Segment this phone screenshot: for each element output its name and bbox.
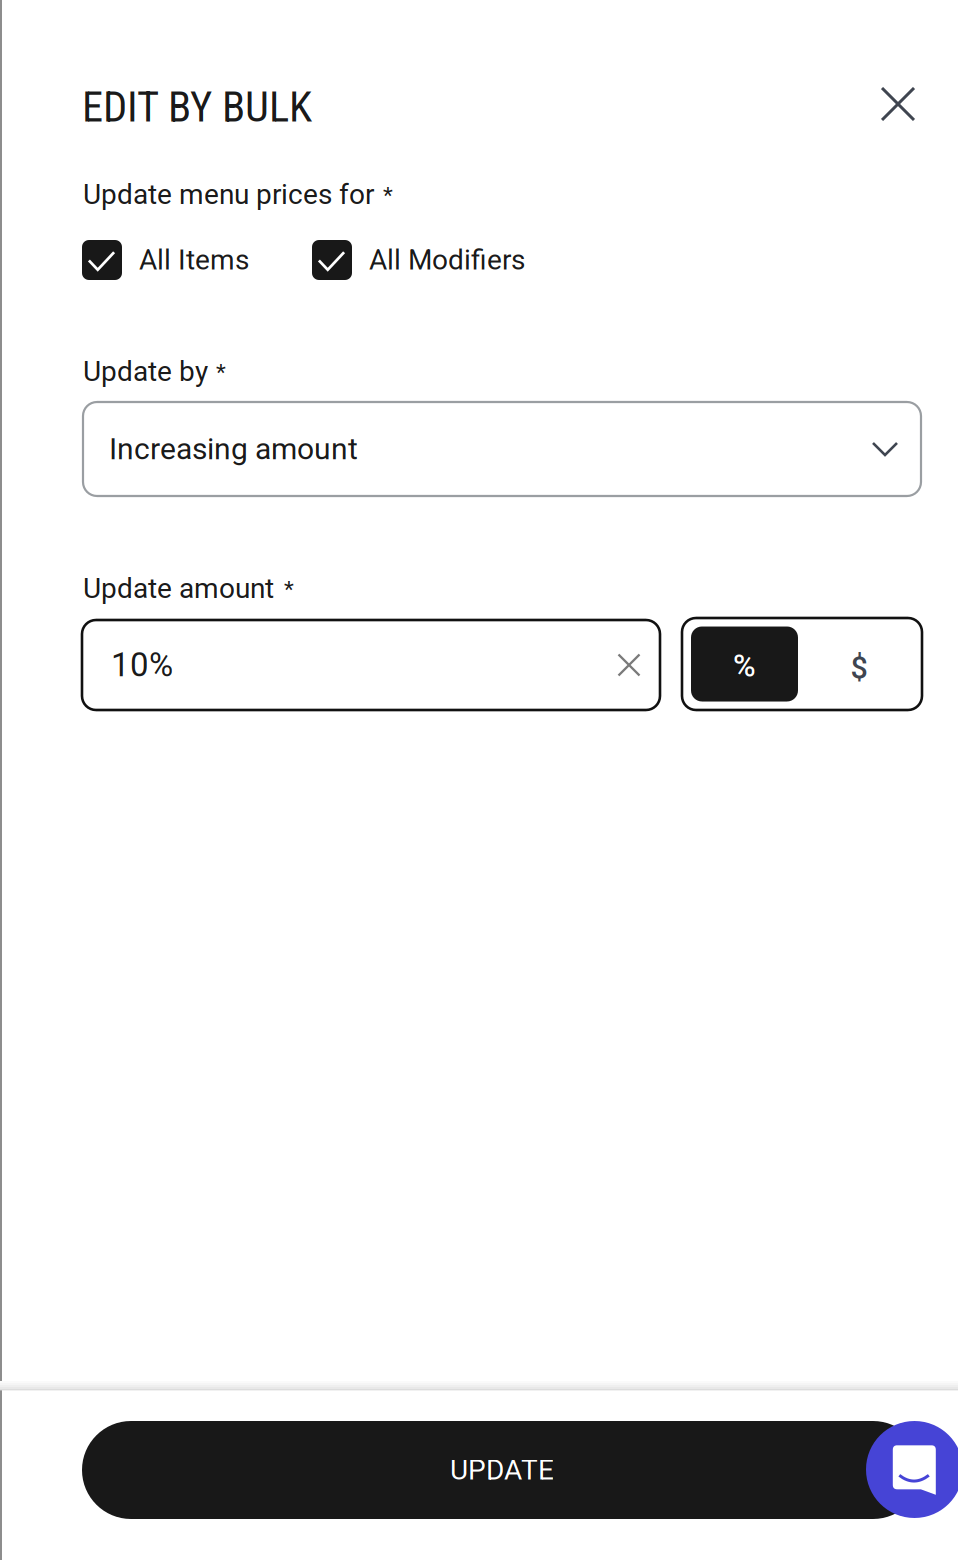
button[interactable]: Clear amount	[608, 644, 650, 686]
staticText: $	[850, 650, 867, 686]
button[interactable]: Close	[875, 81, 921, 127]
staticText: Update menu prices for	[83, 178, 374, 211]
staticText: 10%	[111, 646, 173, 684]
staticText: *	[383, 182, 393, 209]
button[interactable]: UPDATE	[82, 1421, 922, 1519]
button[interactable]: $	[798, 626, 912, 701]
staticText: EDIT BY BULK	[82, 82, 312, 132]
staticText: UPDATE	[450, 1454, 554, 1486]
button[interactable]: All Modifiers	[312, 238, 525, 282]
staticText: *	[284, 576, 294, 603]
button[interactable]: Increasing amount	[83, 402, 921, 496]
staticText: Increasing amount	[109, 431, 358, 467]
button[interactable]: %	[691, 626, 798, 701]
staticText: *	[216, 359, 226, 386]
staticText: All Items	[139, 244, 249, 276]
staticText: %	[733, 648, 756, 684]
staticText: Update amount	[83, 572, 274, 605]
button[interactable]: Open chat	[866, 1421, 958, 1518]
staticText: Update by	[83, 355, 208, 388]
button[interactable]: All Items	[82, 238, 249, 282]
staticText: All Modifiers	[369, 244, 525, 276]
